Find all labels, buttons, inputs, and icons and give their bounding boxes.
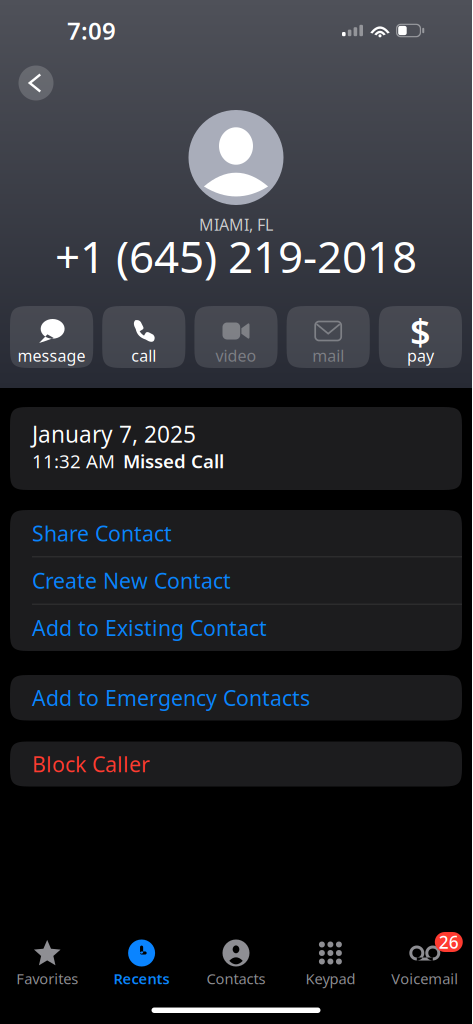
button[interactable]: 26	[378, 939, 472, 985]
button[interactable]: Contacts	[189, 939, 283, 985]
staticText: January 7, 2025	[32, 419, 196, 449]
button[interactable]: Block Caller	[10, 741, 462, 787]
staticText: Contacts	[206, 969, 265, 988]
staticText: call	[131, 345, 156, 366]
staticText: Keypad	[305, 969, 355, 988]
staticText: Add to Emergency Contacts	[32, 684, 310, 712]
staticText: +1 (645) 219-2018	[55, 227, 417, 285]
staticText: Add to Existing Contact	[32, 614, 267, 642]
staticText: message	[18, 345, 86, 366]
button[interactable]: Recents	[94, 939, 189, 985]
staticText: Recents	[114, 969, 170, 988]
button[interactable]: video	[194, 306, 278, 368]
staticText: Voicemail	[391, 969, 458, 988]
button[interactable]: Create New Contact	[10, 557, 462, 604]
staticText: 26	[439, 930, 459, 953]
button[interactable]: Favorites	[0, 939, 94, 985]
button[interactable]: Share Contact	[10, 510, 462, 556]
staticText: Share Contact	[32, 519, 172, 547]
button[interactable]: $	[379, 306, 462, 368]
button[interactable]: Back	[9, 61, 63, 105]
staticText: Favorites	[16, 969, 78, 988]
button[interactable]: message	[10, 306, 93, 368]
staticText: 11:32 AM	[32, 449, 115, 473]
staticText: Missed Call	[123, 449, 224, 473]
button[interactable]: mail	[287, 306, 370, 368]
button[interactable]: call	[102, 306, 185, 368]
staticText: 7:09	[67, 15, 116, 46]
staticText: mail	[312, 345, 344, 366]
button[interactable]: Add to Existing Contact	[10, 604, 462, 651]
staticText: MIAMI, FL	[199, 214, 273, 235]
staticText: $	[410, 307, 431, 355]
staticText: Create New Contact	[32, 566, 231, 595]
staticText: video	[215, 345, 256, 366]
button[interactable]: Keypad	[283, 939, 378, 985]
staticText: pay	[407, 345, 434, 366]
button[interactable]: Add to Emergency Contacts	[10, 674, 462, 721]
staticText: Block Caller	[32, 750, 150, 778]
